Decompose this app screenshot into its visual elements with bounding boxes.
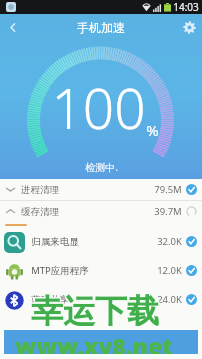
staticText: 检测中.: [85, 160, 118, 174]
staticText: 幸运下载: [31, 290, 159, 330]
button[interactable]: 归属来电显: [0, 227, 202, 256]
staticText: 进程清理: [21, 184, 59, 196]
staticText: 幸运下载: [32, 291, 160, 331]
staticText: %: [146, 120, 159, 140]
staticText: 幸运下载: [32, 290, 160, 330]
staticText: 14:03: [173, 0, 199, 14]
staticText: 39.7M: [154, 205, 182, 218]
staticText: 幸运下载: [30, 290, 158, 330]
staticText: 缓存清理: [21, 206, 59, 218]
staticText: 32.0K: [157, 235, 182, 248]
staticText: www.xy8.net: [15, 330, 173, 354]
staticText: 幸运下载: [30, 292, 158, 332]
staticText: 100: [51, 70, 146, 145]
staticText: 幸运下载: [31, 291, 159, 331]
button[interactable]: 缓存清理: [0, 201, 202, 222]
button[interactable]: Settings: [176, 14, 202, 40]
staticText: 蓝牙共享: [31, 294, 69, 306]
staticText: 24.0K: [157, 293, 182, 306]
staticText: 幸运下载: [31, 292, 159, 332]
button[interactable]: MTP应用程序: [0, 256, 202, 285]
button[interactable]: 进程清理: [0, 179, 202, 200]
staticText: MTP应用程序: [31, 264, 89, 277]
button[interactable]: Back: [0, 14, 26, 40]
staticText: 手机加速: [77, 20, 125, 35]
staticText: 79.5M: [154, 183, 182, 196]
staticText: 12.0K: [157, 264, 182, 277]
staticText: 幸运下载: [30, 291, 158, 331]
button[interactable]: 蓝牙共享: [0, 285, 202, 314]
staticText: 幸运下载: [32, 292, 160, 332]
staticText: 归属来电显: [31, 236, 79, 248]
